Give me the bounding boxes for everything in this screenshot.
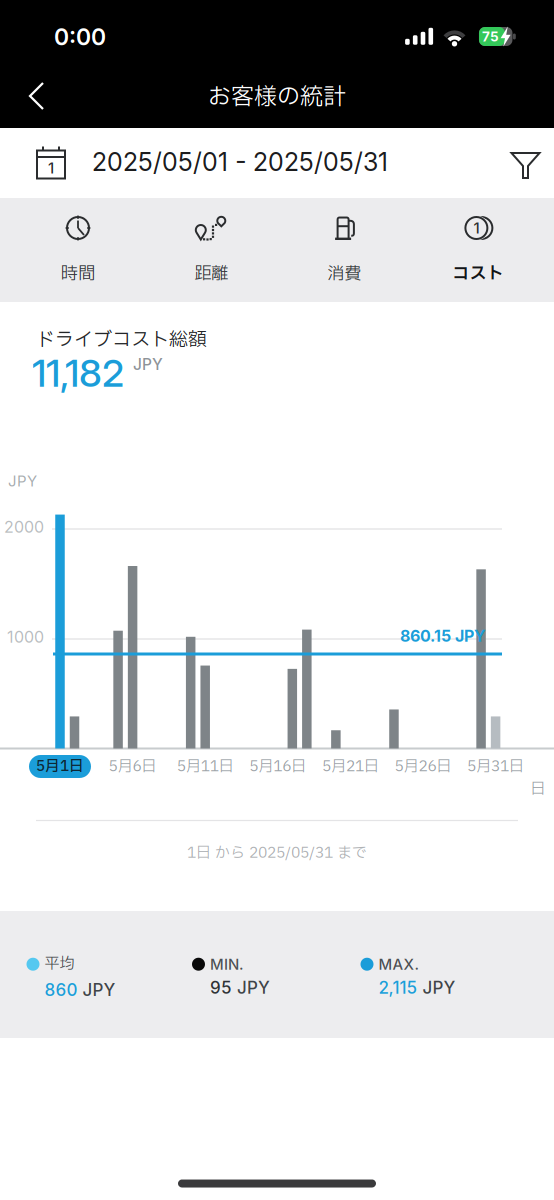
button[interactable]: Filter (503, 143, 547, 187)
staticText: 消費 (328, 261, 362, 287)
button[interactable]: 1 (411, 198, 544, 302)
staticText: 5月21日 (322, 755, 379, 778)
staticText: 5月6日 (109, 755, 157, 778)
button[interactable]: 5月1日 (29, 755, 91, 778)
staticText: JPY (8, 472, 37, 490)
staticText: 2025/05/01 - 2025/05/31 (92, 147, 388, 177)
staticText: 2000 (4, 517, 44, 537)
staticText: JPY (133, 355, 163, 374)
staticText: MIN. (210, 955, 244, 973)
staticText: 時間 (61, 261, 95, 287)
staticText: MAX. (378, 955, 419, 973)
button[interactable]: 時間 (11, 198, 144, 302)
staticText: 距離 (194, 261, 228, 287)
staticText: JPY (82, 979, 115, 1000)
button[interactable]: 1 (36, 132, 436, 194)
button[interactable]: Back (16, 74, 60, 118)
staticText: 860.15 JPY (400, 626, 486, 646)
staticText: ドライブコスト総額 (36, 326, 207, 354)
staticText: コスト (452, 261, 503, 287)
staticText: 1000 (7, 627, 44, 647)
staticText: 0:00 (54, 23, 106, 51)
staticText: 5月31日 (467, 755, 524, 778)
button[interactable]: 距離 (145, 198, 278, 302)
staticText: 1日 から 2025/05/31 まで (187, 842, 367, 864)
staticText: 75 (482, 28, 499, 45)
staticText: 1 (48, 159, 54, 177)
staticText: JPY (237, 977, 270, 998)
staticText: 5月26日 (394, 755, 451, 778)
staticText: 95 (210, 977, 232, 998)
staticText: 5月11日 (177, 755, 234, 778)
staticText: 日 (530, 778, 545, 800)
staticText: 平均 (44, 953, 74, 975)
staticText: 5月1日 (36, 756, 84, 777)
staticText: 11,182 (32, 350, 124, 396)
staticText: お客様の統計 (208, 80, 346, 114)
staticText: 5月16日 (249, 755, 306, 778)
button[interactable]: 消費 (278, 198, 411, 302)
staticText: 1 (473, 219, 479, 237)
staticText: 860 (44, 979, 77, 1000)
staticText: 2,115 (378, 977, 417, 998)
staticText: JPY (422, 977, 455, 998)
